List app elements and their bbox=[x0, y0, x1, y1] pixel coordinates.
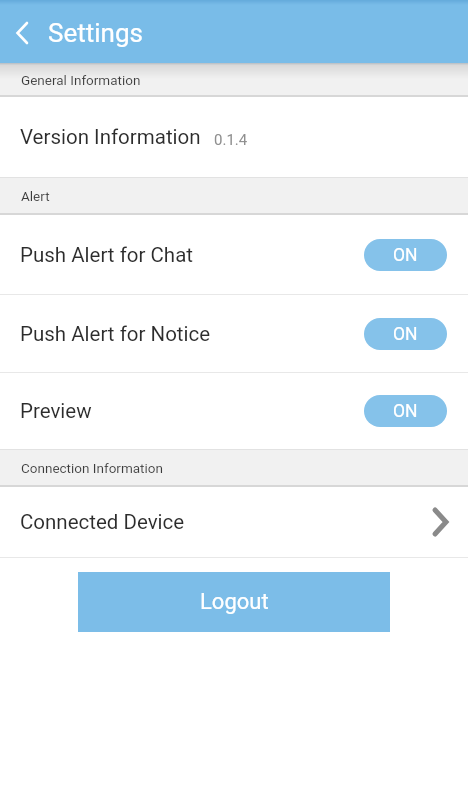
staticText: Connection Information bbox=[21, 460, 163, 476]
button[interactable]: ON bbox=[364, 395, 447, 427]
button[interactable] bbox=[0, 11, 44, 55]
button[interactable]: Logout bbox=[78, 572, 390, 632]
staticText: ON bbox=[393, 401, 418, 422]
button[interactable]: Preview bbox=[0, 373, 468, 449]
button[interactable]: Version Information bbox=[0, 97, 468, 177]
staticText: General Information bbox=[21, 72, 141, 88]
staticText: Alert bbox=[21, 188, 50, 204]
staticText: Push Alert for Notice bbox=[20, 322, 211, 346]
staticText: Preview bbox=[20, 399, 92, 423]
staticText: ON bbox=[393, 245, 418, 266]
staticText: ON bbox=[393, 324, 418, 345]
staticText: Connected Device bbox=[20, 510, 185, 534]
button[interactable]: Push Alert for Chat bbox=[0, 215, 468, 294]
staticText: Settings bbox=[48, 18, 143, 48]
button[interactable]: ON bbox=[364, 239, 447, 271]
button[interactable]: Connected Device bbox=[0, 487, 468, 557]
button[interactable]: Push Alert for Notice bbox=[0, 295, 468, 372]
button[interactable]: ON bbox=[364, 318, 447, 350]
staticText: 0.1.4 bbox=[214, 131, 248, 149]
staticText: Version Information bbox=[20, 125, 201, 149]
staticText: Push Alert for Chat bbox=[20, 243, 193, 267]
staticText: Logout bbox=[200, 589, 269, 615]
